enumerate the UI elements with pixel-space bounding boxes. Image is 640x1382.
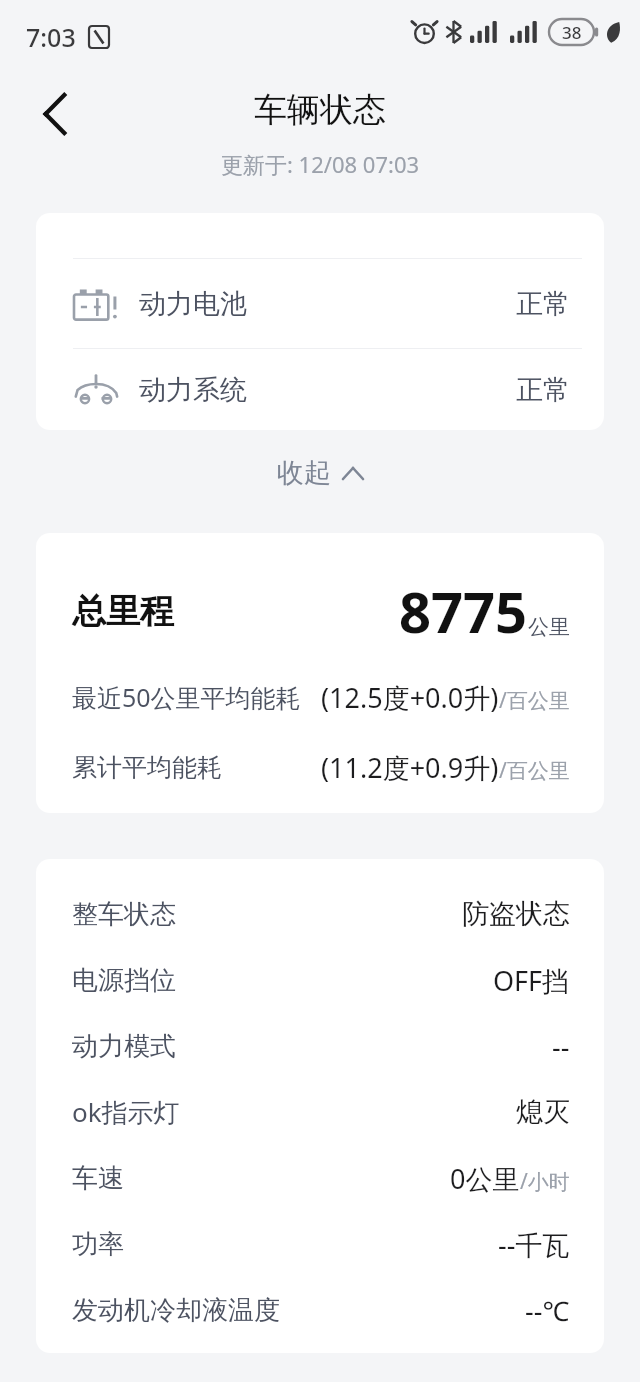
button[interactable]: 整车状态: [36, 881, 604, 947]
staticText: 累计平均能耗: [72, 752, 222, 783]
button[interactable]: 车速: [36, 1145, 604, 1211]
staticText: 防盗状态: [462, 897, 570, 931]
button[interactable]: 动力模式: [36, 1013, 604, 1079]
staticText: 车辆状态: [254, 89, 386, 131]
staticText: 动力模式: [72, 1030, 176, 1063]
staticText: /百公里: [499, 756, 570, 785]
button[interactable]: 电源挡位: [36, 947, 604, 1013]
staticText: 7:03: [26, 20, 76, 54]
staticText: /小时: [520, 1167, 570, 1196]
staticText: ok指示灯: [72, 1094, 180, 1130]
staticText: OFF挡: [493, 962, 570, 999]
staticText: 最近50公里平均能耗: [72, 680, 301, 714]
staticText: 0公里: [450, 1160, 520, 1197]
button[interactable]: 发动机冷却液温度: [36, 1277, 604, 1343]
button[interactable]: 动力系统: [36, 349, 604, 430]
staticText: (12.5度+0.0升): [321, 679, 499, 716]
staticText: 8775: [399, 573, 528, 649]
staticText: 收起: [277, 456, 331, 490]
button[interactable]: Back: [20, 78, 92, 150]
staticText: 熄灭: [516, 1095, 570, 1129]
staticText: 发动机冷却液温度: [72, 1294, 280, 1327]
staticText: 功率: [72, 1228, 124, 1261]
staticText: 38: [562, 21, 582, 44]
staticText: 总里程: [72, 590, 174, 633]
button[interactable]: 功率: [36, 1211, 604, 1277]
staticText: /百公里: [499, 686, 570, 715]
staticText: 整车状态: [72, 898, 176, 931]
staticText: --: [552, 1028, 570, 1065]
staticText: --℃: [525, 1292, 570, 1329]
staticText: 公里: [528, 614, 570, 640]
staticText: 车速: [72, 1162, 124, 1195]
staticText: 动力系统: [139, 373, 247, 407]
staticText: (11.2度+0.9升): [321, 749, 499, 786]
button[interactable]: ok指示灯: [36, 1079, 604, 1145]
button[interactable]: 动力电池: [36, 259, 604, 348]
staticText: 电源挡位: [72, 964, 176, 997]
staticText: 动力电池: [139, 287, 247, 321]
staticText: 正常: [516, 373, 570, 407]
staticText: 更新于: 12/08 07:03: [221, 149, 420, 179]
staticText: 正常: [516, 287, 570, 321]
staticText: --千瓦: [498, 1226, 570, 1263]
button[interactable]: 收起: [0, 441, 640, 505]
